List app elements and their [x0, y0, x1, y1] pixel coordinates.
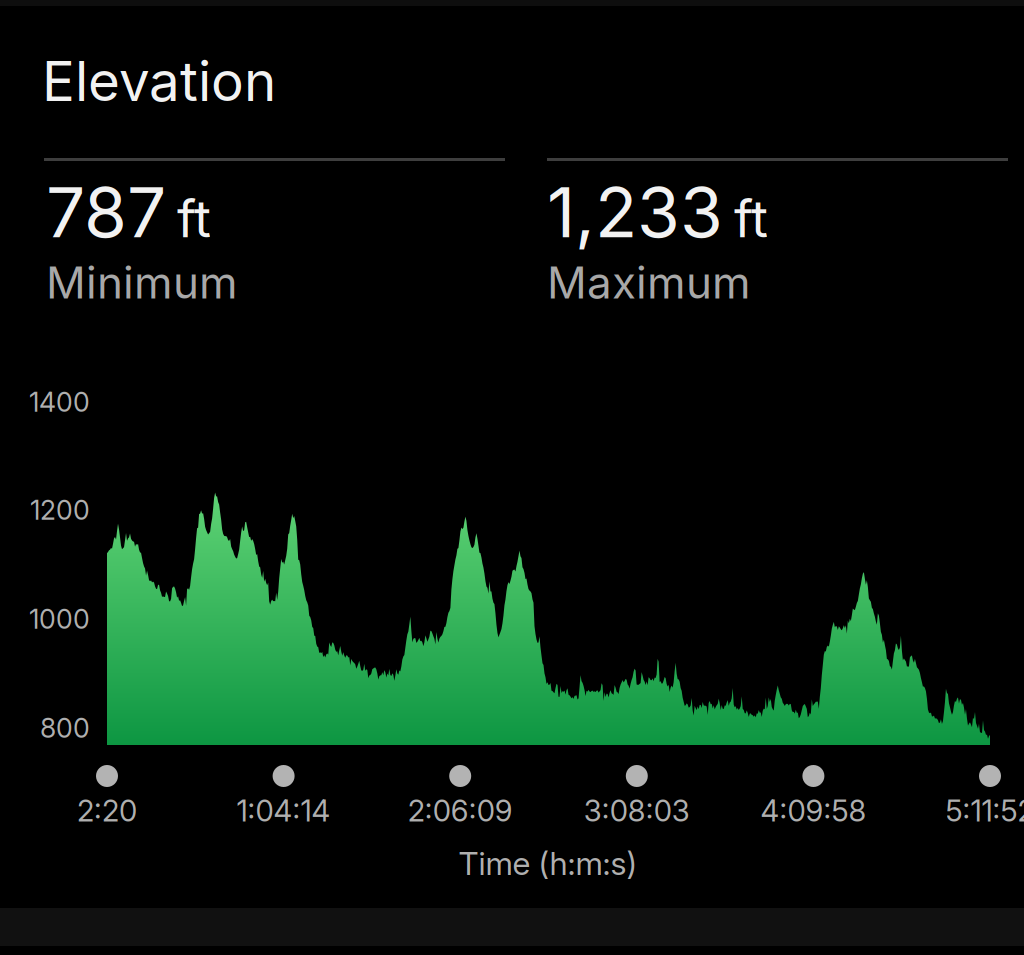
staticText: 1,233 — [547, 170, 723, 254]
button[interactable]: 1,233 — [547, 158, 1008, 309]
staticText: Elevation — [42, 48, 276, 114]
staticText: ft — [734, 187, 768, 250]
staticText: 2:20 — [77, 793, 137, 828]
staticText: 1400 — [29, 386, 90, 418]
staticText: 5:11:52 — [945, 793, 1024, 828]
staticText: 1:04:14 — [237, 793, 331, 828]
staticText: 800 — [40, 712, 90, 744]
staticText: 1000 — [29, 603, 90, 635]
staticText: 4:09:58 — [760, 793, 866, 828]
staticText: 2:06:09 — [408, 793, 513, 828]
button[interactable]: 787 — [44, 158, 505, 309]
staticText: Maximum — [547, 256, 751, 309]
staticText: Minimum — [46, 256, 238, 309]
staticText: ft — [177, 187, 211, 250]
staticText: Time (h:m:s) — [458, 844, 637, 883]
button[interactable]: Elevation over time chart — [107, 386, 990, 745]
staticText: 3:08:03 — [584, 793, 690, 828]
staticText: 1200 — [30, 494, 90, 526]
staticText: 787 — [46, 170, 166, 254]
